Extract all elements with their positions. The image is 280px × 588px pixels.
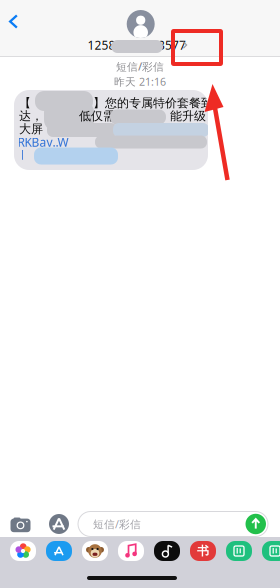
- button[interactable]: Camera: [3, 507, 37, 541]
- staticText: 】您的专属特价套餐到: [93, 96, 213, 110]
- button[interactable]: Music: [118, 541, 144, 561]
- button[interactable]: Meituan: [226, 541, 252, 561]
- staticText: 丨: [17, 148, 28, 161]
- button[interactable]: Contact details: [70, 9, 210, 53]
- staticText: 3577: [158, 37, 186, 53]
- button[interactable]: Xiaohongshu: [190, 541, 216, 561]
- staticText: 12583: [87, 37, 122, 53]
- button[interactable]: Memoji: [82, 541, 108, 561]
- staticText: 昨天 21:16: [114, 74, 166, 89]
- button[interactable]: Douyin: [154, 541, 180, 561]
- staticText: RKBav..W: [17, 134, 68, 150]
- button[interactable]: Message field: [78, 511, 268, 536]
- staticText: 书: [197, 544, 209, 558]
- button[interactable]: App Store: [46, 541, 72, 561]
- button[interactable]: Photos: [10, 541, 36, 561]
- button[interactable]: App: [262, 541, 280, 561]
- staticText: 短信/彩信: [116, 59, 164, 73]
- button[interactable]: Back: [0, 3, 28, 39]
- staticText: 短信/彩信: [93, 517, 141, 531]
- button[interactable]: iMessage apps: [44, 509, 74, 539]
- staticText: 达，: [19, 109, 43, 123]
- staticText: 大屏: [19, 122, 43, 136]
- staticText: 能升级: [170, 109, 206, 123]
- staticText: 低仅需: [79, 109, 115, 123]
- staticText: 【: [19, 96, 31, 110]
